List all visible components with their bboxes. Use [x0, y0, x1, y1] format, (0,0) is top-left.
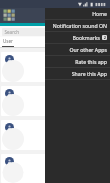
- staticText: Home: [92, 10, 107, 17]
- button[interactable]: Our other Apps: [45, 44, 110, 55]
- button[interactable]: User: [2, 38, 14, 47]
- button[interactable]: Home: [45, 8, 110, 19]
- button[interactable]: [1, 52, 109, 82]
- staticText: 2: [103, 35, 106, 40]
- staticText: Share this App: [71, 70, 107, 77]
- staticText: Our other Apps: [69, 46, 107, 53]
- button[interactable]: Open navigation drawer: [3, 9, 15, 21]
- button[interactable]: [1, 86, 109, 116]
- button[interactable]: Rate this app: [45, 56, 110, 67]
- button[interactable]: Bookmarks: [45, 32, 110, 43]
- button[interactable]: [1, 120, 109, 150]
- staticText: User: [2, 38, 13, 44]
- staticText: Notification sound ON: [52, 22, 107, 29]
- button[interactable]: Share this App: [45, 68, 110, 79]
- button[interactable]: Search: [2, 28, 108, 36]
- button[interactable]: [1, 154, 109, 183]
- staticText: Bookmarks: [72, 34, 100, 41]
- button[interactable]: Notification sound ON: [45, 20, 110, 31]
- staticText: Search: [4, 29, 19, 35]
- staticText: Rate this app: [75, 58, 107, 65]
